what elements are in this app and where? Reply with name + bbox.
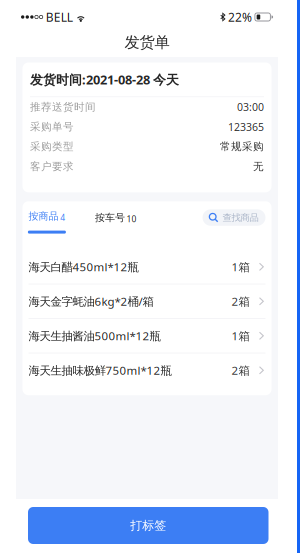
staticText: 4 xyxy=(60,212,65,223)
staticText: 查找商品 xyxy=(222,212,258,223)
staticText: 按车号 xyxy=(95,211,125,224)
staticText: 发货时间:2021-08-28 今天 xyxy=(30,71,179,88)
staticText: 海天生抽酱油500ml*12瓶 xyxy=(28,328,160,344)
button[interactable]: 海天生抽酱油500ml*12瓶 xyxy=(22,319,271,353)
button[interactable]: 按车号 xyxy=(66,211,136,232)
staticText: 海天白醋450ml*12瓶 xyxy=(28,259,138,275)
staticText: 22% xyxy=(228,9,252,25)
button[interactable]: 海天生抽味极鲜750ml*12瓶 xyxy=(22,353,271,387)
staticText: 常规采购 xyxy=(220,140,264,153)
button[interactable]: 查找商品 xyxy=(202,209,265,234)
staticText: 2箱 xyxy=(231,362,249,378)
staticText: 采购单号 xyxy=(30,120,74,133)
staticText: 1箱 xyxy=(231,328,249,344)
staticText: 推荐送货时间 xyxy=(30,100,96,114)
staticText: 海天金字蚝油6kg*2桶/箱 xyxy=(28,293,153,309)
staticText: 10 xyxy=(126,213,136,225)
staticText: 客户要求 xyxy=(30,160,74,173)
staticText: 无 xyxy=(253,160,264,173)
button[interactable]: 海天金字蚝油6kg*2桶/箱 xyxy=(22,284,271,319)
button[interactable]: 打标签 xyxy=(28,507,268,544)
staticText: 03:00 xyxy=(237,100,264,114)
staticText: BELL xyxy=(46,9,73,25)
staticText: 按商品 xyxy=(29,210,59,222)
staticText: 123365 xyxy=(228,120,264,134)
staticText: 采购类型 xyxy=(30,140,74,153)
button[interactable]: 海天白醋450ml*12瓶 xyxy=(22,250,271,284)
staticText: 海天生抽味极鲜750ml*12瓶 xyxy=(28,362,171,378)
staticText: 2箱 xyxy=(231,293,249,309)
staticText: 1箱 xyxy=(231,259,249,275)
button[interactable]: 按商品 xyxy=(28,210,66,234)
staticText: 发货单 xyxy=(124,33,169,52)
staticText: 打标签 xyxy=(130,518,166,533)
